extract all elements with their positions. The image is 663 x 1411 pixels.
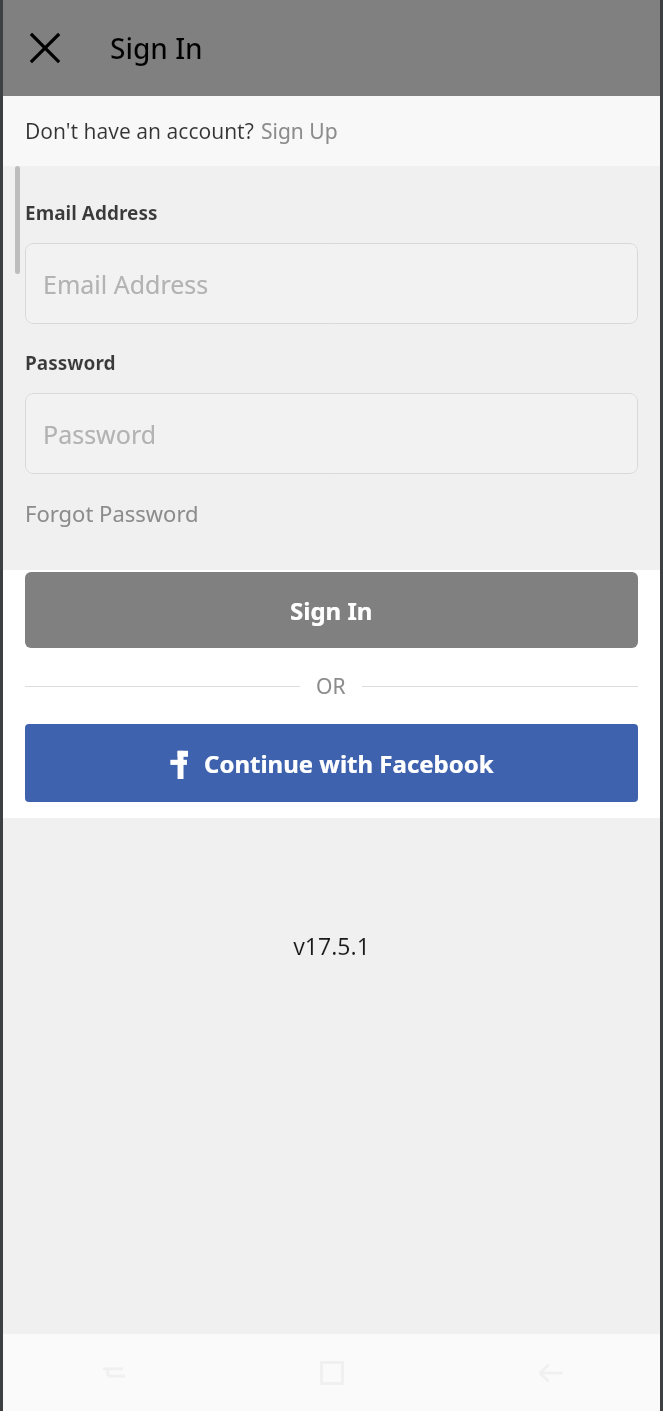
button[interactable]: Continue with Facebook — [25, 724, 638, 802]
staticText: Email Address — [43, 267, 209, 301]
button[interactable]: Forgot Password — [25, 498, 199, 528]
staticText: Password — [43, 417, 157, 451]
staticText: v17.5.1 — [293, 930, 370, 961]
button[interactable]: Email Address — [25, 243, 638, 324]
staticText: Sign In — [110, 29, 203, 67]
staticText: Sign Up — [261, 117, 338, 146]
button[interactable]: Password — [25, 393, 638, 474]
staticText: OR — [316, 672, 346, 701]
staticText: Continue with Facebook — [204, 747, 494, 780]
button[interactable]: Sign In — [25, 572, 638, 648]
staticText: Sign In — [290, 594, 373, 627]
staticText: Email Address — [25, 200, 158, 226]
button[interactable]: Close — [19, 22, 71, 74]
staticText: Password — [25, 350, 116, 376]
staticText: Don't have an account? — [25, 117, 254, 146]
staticText: Forgot Password — [25, 498, 199, 528]
button[interactable]: Sign Up — [261, 117, 338, 146]
